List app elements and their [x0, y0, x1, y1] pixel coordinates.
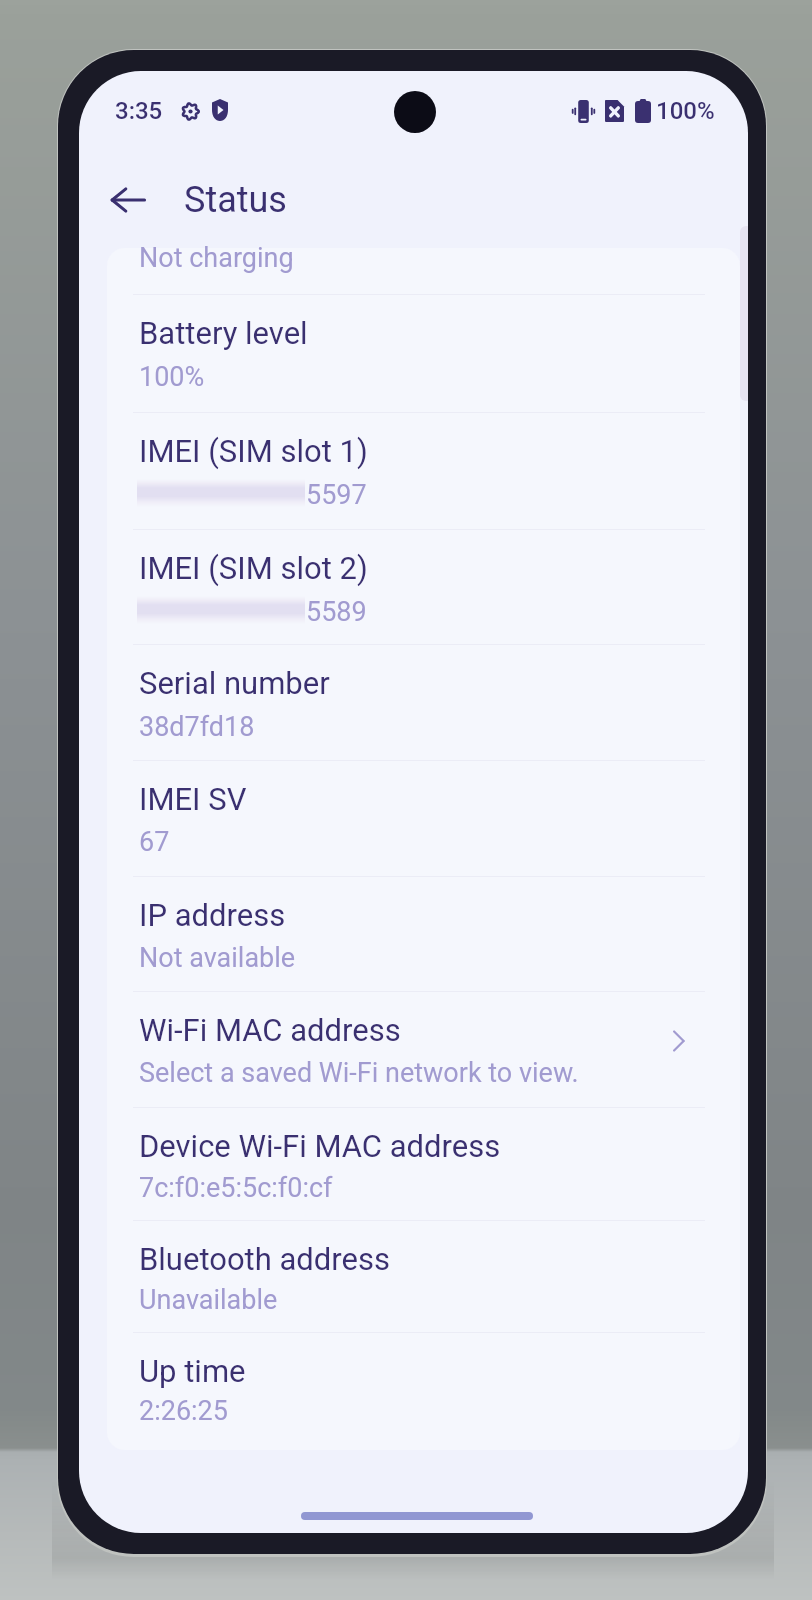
staticText: IP address	[139, 897, 286, 933]
staticText: 38d7fd18	[139, 711, 255, 743]
button[interactable]	[106, 760, 717, 876]
staticText: 5597	[306, 479, 367, 511]
staticText: 100%	[139, 361, 205, 393]
staticText: Not charging	[139, 242, 294, 274]
staticText: Wi-Fi MAC address	[139, 1012, 401, 1048]
staticText: Serial number	[139, 665, 330, 701]
staticText: Battery level	[139, 315, 308, 351]
button[interactable]	[106, 876, 717, 991]
button[interactable]	[106, 1220, 717, 1332]
staticText: IMEI (SIM slot 1)	[139, 433, 368, 469]
staticText: Select a saved Wi-Fi network to view.	[139, 1057, 579, 1089]
button[interactable]	[106, 412, 717, 529]
button[interactable]	[106, 644, 717, 760]
staticText: 5589	[306, 596, 367, 628]
staticText: Unavailable	[139, 1284, 278, 1316]
button[interactable]	[106, 294, 717, 412]
button[interactable]	[106, 1107, 717, 1220]
staticText: Device Wi-Fi MAC address	[139, 1128, 501, 1164]
button[interactable]	[106, 991, 717, 1107]
staticText: Status	[184, 179, 287, 221]
staticText: Up time	[139, 1353, 246, 1389]
staticText: 3:35	[115, 97, 163, 125]
staticText: Bluetooth address	[139, 1241, 390, 1277]
button[interactable]	[106, 529, 717, 644]
staticText: 2:26:25	[139, 1395, 228, 1427]
staticText: 100%	[656, 97, 715, 125]
staticText: 67	[139, 826, 170, 858]
staticText: Not available	[139, 942, 296, 974]
button[interactable]	[106, 1332, 717, 1449]
button[interactable]: Navigate up	[102, 174, 154, 226]
staticText: IMEI (SIM slot 2)	[139, 550, 368, 586]
staticText: 7c:f0:e5:5c:f0:cf	[139, 1172, 333, 1204]
staticText: IMEI SV	[139, 781, 247, 817]
